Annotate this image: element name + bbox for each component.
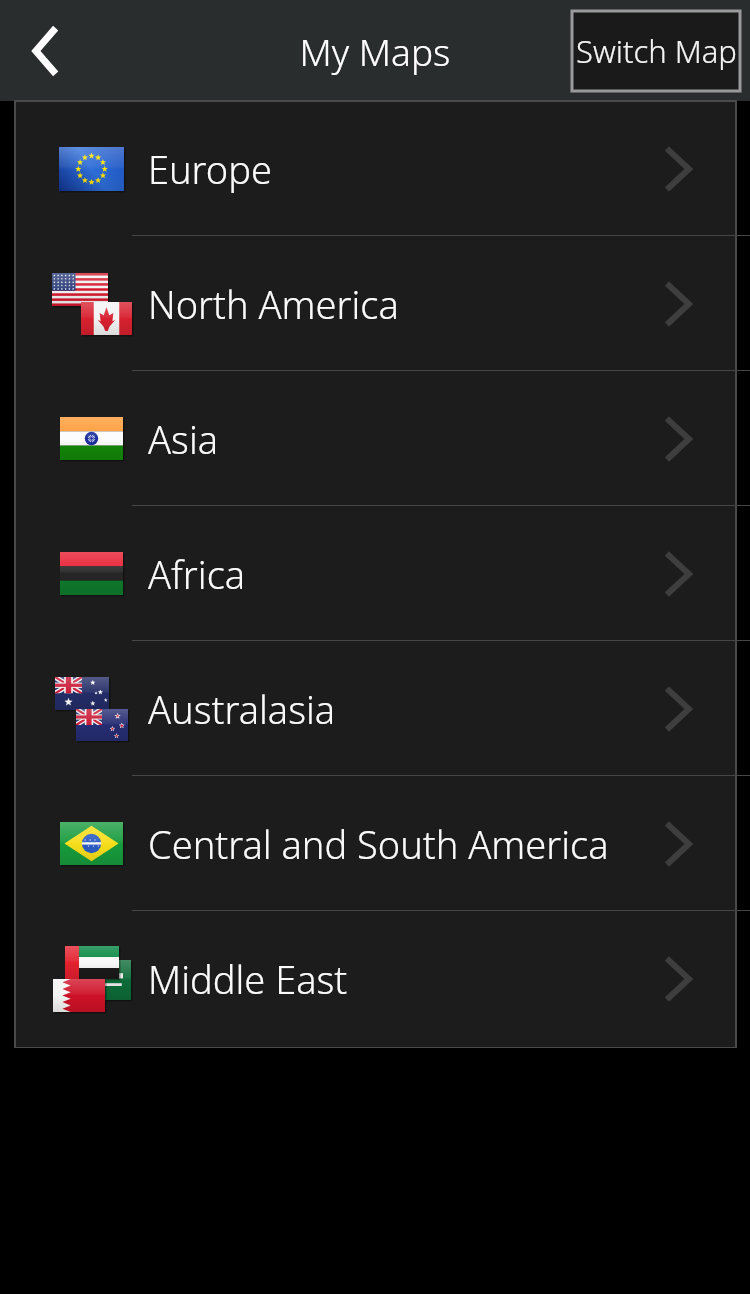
staticText: Europe: [148, 143, 272, 195]
staticText: Middle East: [148, 953, 348, 1005]
button[interactable]: Switch Map: [572, 11, 740, 91]
staticText: Australasia: [148, 683, 336, 735]
button[interactable]: Back: [16, 15, 74, 87]
button[interactable]: Central and South America: [15, 776, 736, 911]
button[interactable]: Europe: [15, 101, 736, 236]
button[interactable]: Asia: [15, 371, 736, 506]
button[interactable]: Australasia: [15, 641, 736, 776]
button[interactable]: Africa: [15, 506, 736, 641]
staticText: Asia: [148, 413, 219, 465]
staticText: North America: [148, 278, 399, 330]
button[interactable]: Middle East: [15, 911, 736, 1046]
staticText: My Maps: [0, 26, 750, 76]
staticText: Africa: [148, 548, 246, 600]
button[interactable]: North America: [15, 236, 736, 371]
staticText: Switch Map: [576, 30, 737, 72]
staticText: Central and South America: [148, 818, 609, 870]
